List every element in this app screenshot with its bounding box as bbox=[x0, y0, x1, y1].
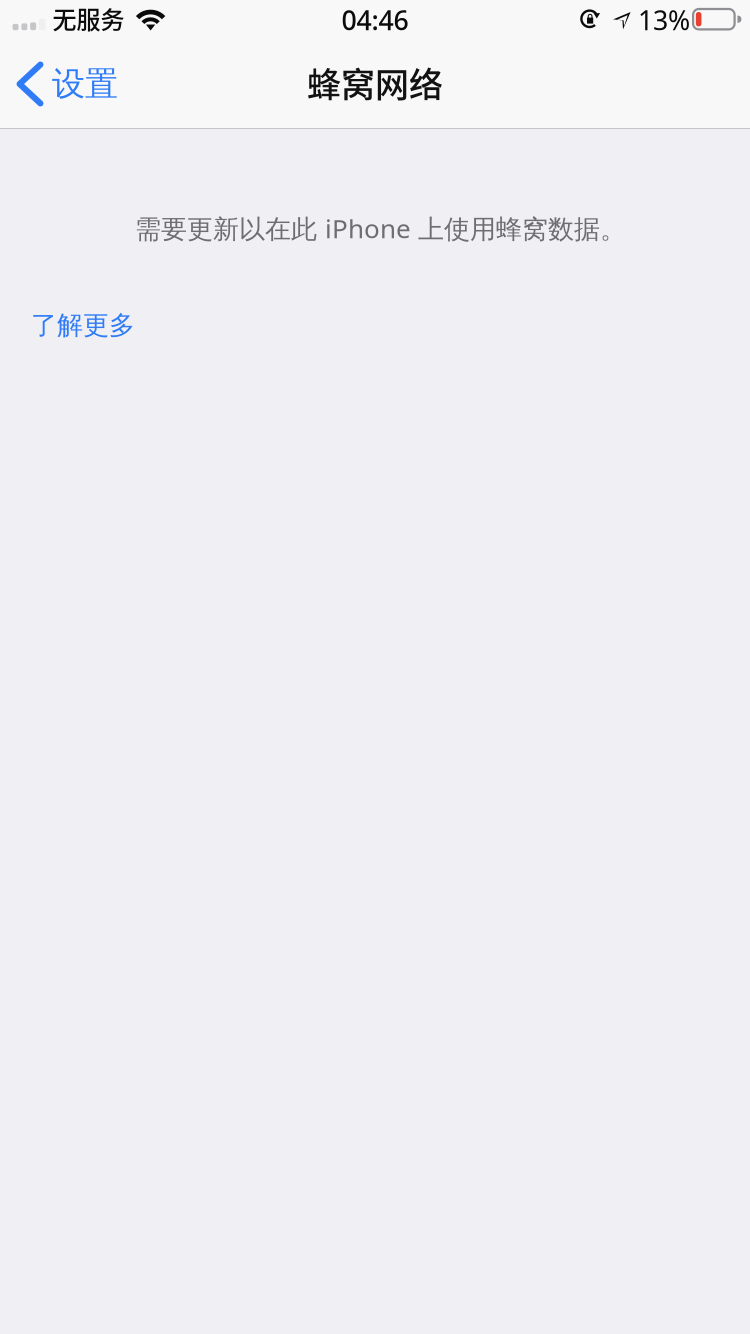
staticText: 无服务 bbox=[52, 1, 124, 36]
staticText: 13% bbox=[638, 2, 690, 38]
staticText: 需要更新以在此 iPhone 上使用蜂窝数据。 bbox=[135, 210, 626, 246]
button[interactable]: 了解更多 bbox=[0, 303, 151, 348]
button[interactable]: 设置 bbox=[0, 40, 132, 128]
staticText: 蜂窝网络 bbox=[307, 58, 443, 107]
staticText: 04:46 bbox=[341, 2, 408, 38]
staticText: 设置 bbox=[52, 63, 118, 105]
staticText: 了解更多 bbox=[31, 309, 135, 342]
